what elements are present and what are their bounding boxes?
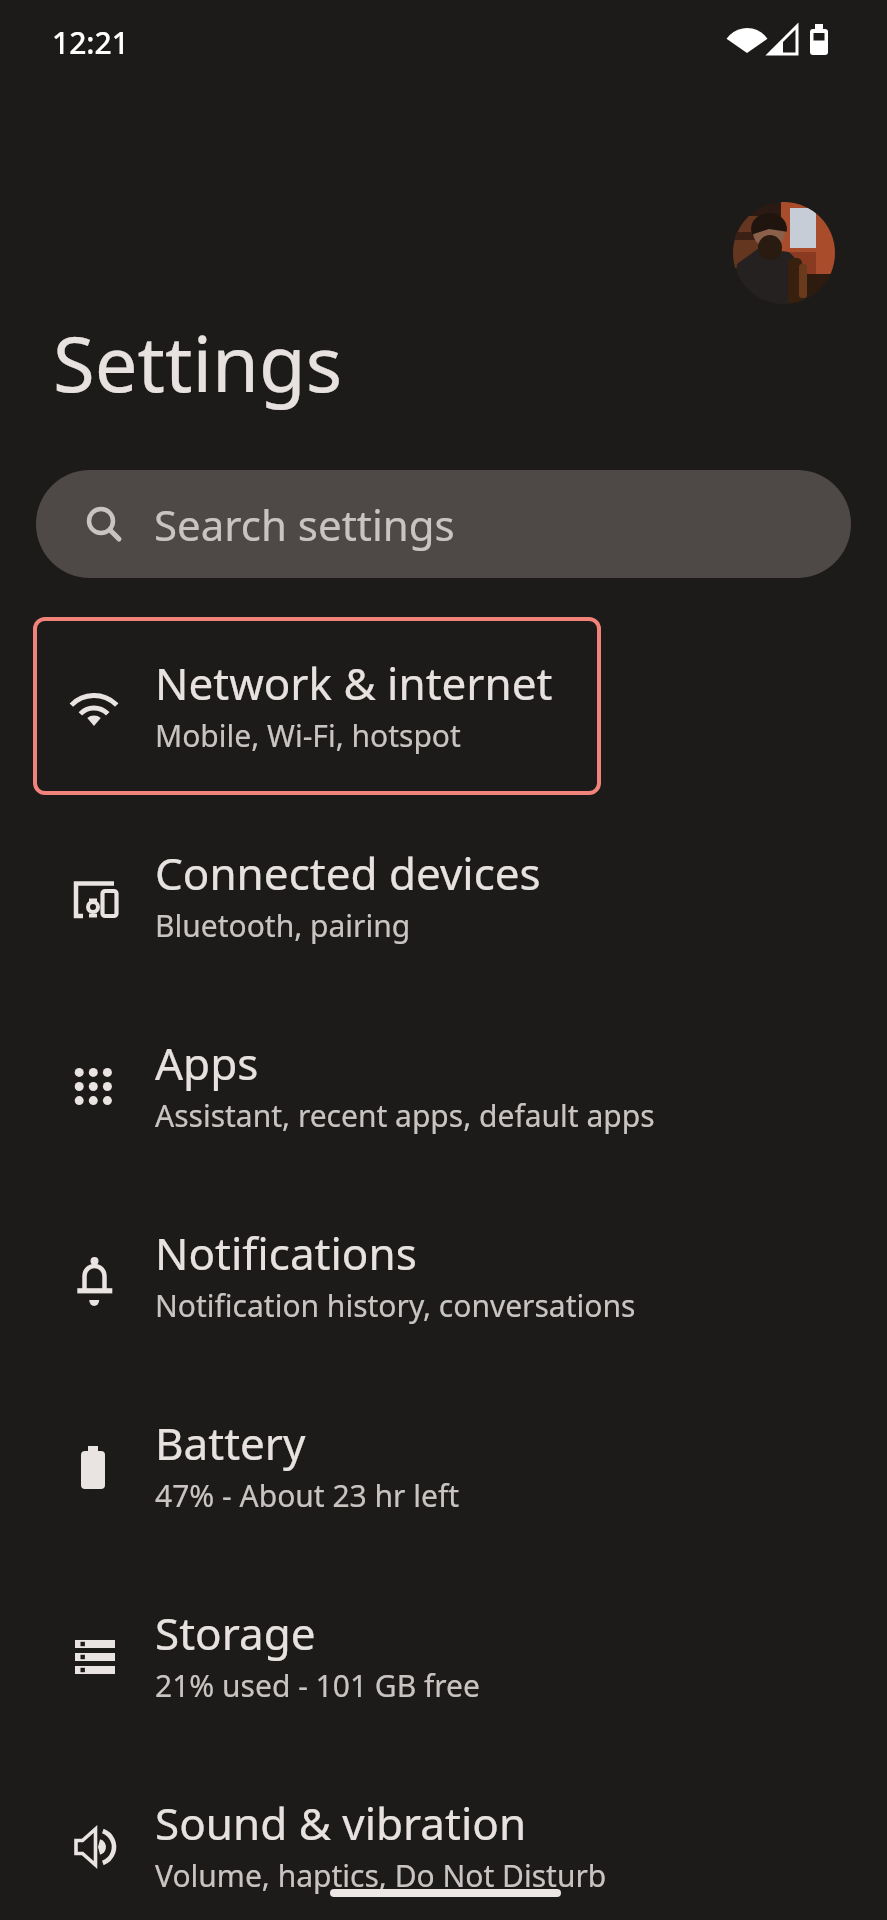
button[interactable]: Apps: [0, 998, 887, 1188]
staticText: Bluetooth, pairing: [155, 905, 411, 946]
button[interactable]: Network & internet: [0, 618, 887, 808]
staticText: Connected devices: [155, 843, 541, 903]
staticText: Notifications: [155, 1223, 417, 1283]
button[interactable]: Connected devices: [0, 808, 887, 998]
button[interactable]: Notifications: [0, 1188, 887, 1378]
button[interactable]: Storage: [0, 1568, 887, 1758]
staticText: Apps: [155, 1033, 259, 1093]
staticText: Settings: [53, 311, 343, 415]
staticText: 21% used - 101 GB free: [155, 1665, 480, 1706]
staticText: Mobile, Wi-Fi, hotspot: [155, 715, 461, 756]
staticText: 47% - About 23 hr left: [155, 1475, 460, 1516]
staticText: Search settings: [154, 496, 455, 553]
button[interactable]: Search settings: [36, 470, 851, 578]
staticText: Volume, haptics, Do Not Disturb: [155, 1855, 607, 1896]
staticText: Storage: [155, 1603, 316, 1663]
staticText: 12:21: [52, 22, 129, 63]
staticText: Battery: [155, 1413, 306, 1473]
button[interactable]: Battery: [0, 1378, 887, 1568]
staticText: Network & internet: [155, 653, 553, 713]
staticText: Assistant, recent apps, default apps: [155, 1095, 655, 1136]
staticText: Sound & vibration: [155, 1793, 527, 1853]
staticText: Notification history, conversations: [155, 1285, 636, 1326]
button[interactable]: Sound & vibration: [0, 1758, 887, 1920]
